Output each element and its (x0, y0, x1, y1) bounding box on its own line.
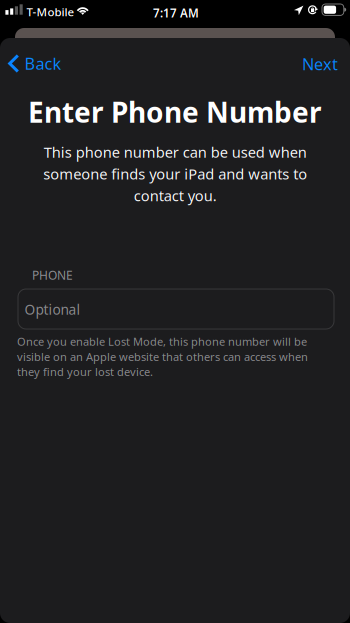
staticText: Once you enable Lost Mode, this phone nu… (17, 334, 308, 379)
staticText: This phone number can be used when someo… (43, 142, 307, 205)
button[interactable]: Next (302, 56, 342, 72)
staticText: Optional (24, 300, 80, 319)
staticText: 7:17 AM (153, 5, 199, 21)
staticText: Enter Phone Number (28, 93, 322, 131)
staticText: Back (24, 52, 61, 75)
staticText: Next (302, 53, 338, 75)
staticText: PHONE (32, 267, 73, 283)
staticText: T-Mobile (26, 4, 74, 19)
button[interactable]: Back (8, 54, 61, 73)
